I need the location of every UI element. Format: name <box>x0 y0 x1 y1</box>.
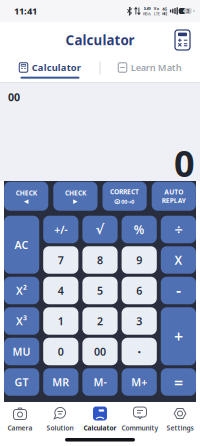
button[interactable]: 2 <box>82 307 118 335</box>
button[interactable]: % <box>122 216 157 243</box>
staticText: Solution <box>46 423 73 432</box>
staticText: X³ <box>16 314 27 328</box>
button[interactable]: 3 <box>122 307 157 335</box>
button[interactable]: √ <box>82 216 118 243</box>
staticText: MR <box>52 375 69 389</box>
button[interactable]: - <box>161 277 196 304</box>
button[interactable]: ÷ <box>161 216 196 243</box>
staticText: Calculator <box>32 61 81 74</box>
staticText: 5 <box>97 283 103 298</box>
button[interactable]: Settings <box>160 406 200 432</box>
staticText: 9 <box>136 253 142 267</box>
button[interactable]: M- <box>82 368 118 396</box>
button[interactable]: Solution <box>40 406 80 432</box>
staticText: 6 <box>136 283 142 298</box>
staticText: M- <box>93 375 106 389</box>
staticText: GT <box>15 375 29 389</box>
button[interactable]: CHECK <box>4 182 48 211</box>
staticText: Camera <box>7 423 32 432</box>
button[interactable]: X² <box>4 277 39 304</box>
staticText: AC <box>15 238 29 252</box>
button[interactable]: MU <box>4 338 39 365</box>
button[interactable]: 0 <box>43 338 78 365</box>
staticText: 0 <box>58 344 64 359</box>
staticText: CHECK <box>65 189 86 197</box>
staticText: REPLAY <box>162 196 186 205</box>
staticText: 4G <box>162 6 167 11</box>
staticText: Settings <box>166 423 193 432</box>
staticText: CHECK <box>16 189 37 197</box>
button[interactable]: AC <box>4 216 39 274</box>
staticText: 2 <box>97 314 103 328</box>
button[interactable]: · <box>122 338 157 365</box>
button[interactable]: X <box>161 246 196 274</box>
staticText: AUTO <box>164 187 183 196</box>
staticText: 00 <box>8 90 20 104</box>
staticText: = <box>174 371 183 393</box>
staticText: MU <box>13 344 31 359</box>
button[interactable]: + <box>161 307 196 365</box>
button[interactable]: Calculator <box>80 406 120 432</box>
staticText: 8 <box>97 253 103 267</box>
button[interactable]: 00 <box>82 338 118 365</box>
staticText: CORRECT <box>110 187 139 196</box>
button[interactable]: 6 <box>122 277 157 304</box>
staticText: Calculator <box>83 423 116 432</box>
staticText: + <box>174 326 183 347</box>
staticText: 00 <box>94 344 106 359</box>
button[interactable]: +/- <box>43 216 78 243</box>
staticText: 4 <box>58 283 64 298</box>
staticText: Vo <box>154 6 160 11</box>
button[interactable]: 1 <box>43 307 78 335</box>
button[interactable]: CORRECT <box>102 182 147 211</box>
staticText: 00→0 <box>121 198 134 205</box>
staticText: X <box>174 252 182 268</box>
button[interactable]: CHECK <box>53 182 97 211</box>
staticText: M+ <box>131 375 147 389</box>
button[interactable]: M+ <box>122 368 157 396</box>
staticText: Calculator <box>65 31 134 49</box>
staticText: 4 <box>183 7 186 15</box>
button[interactable] <box>175 30 200 50</box>
button[interactable]: 9 <box>122 246 157 274</box>
button[interactable]: 5 <box>82 277 118 304</box>
staticText: ÷ <box>174 220 182 239</box>
button[interactable]: 4 <box>43 277 78 304</box>
staticText: 1 <box>58 314 64 328</box>
button[interactable]: AUTO <box>152 182 196 211</box>
button[interactable]: X³ <box>4 307 39 335</box>
staticText: × <box>116 198 119 205</box>
staticText: 11:41 <box>14 5 37 17</box>
button[interactable]: 8 <box>82 246 118 274</box>
button[interactable]: MR <box>43 368 78 396</box>
staticText: Learn Math <box>131 61 182 74</box>
staticText: % <box>134 221 145 237</box>
staticText: X² <box>16 283 27 298</box>
staticText: Community <box>121 423 158 432</box>
staticText: - <box>176 280 181 301</box>
staticText: LTE <box>154 11 160 16</box>
staticText: 3 <box>186 7 189 15</box>
staticText: KB/s <box>143 11 151 16</box>
staticText: 3 <box>136 314 142 328</box>
button[interactable]: Camera <box>0 406 40 432</box>
staticText: √ <box>95 222 104 237</box>
staticText: 0.49 <box>144 6 151 11</box>
button[interactable]: Calculator <box>0 58 100 82</box>
staticText: 7 <box>58 253 64 267</box>
button[interactable]: Learn Math <box>100 58 200 82</box>
staticText: 0 <box>174 139 195 187</box>
button[interactable]: 7 <box>43 246 78 274</box>
staticText: · <box>137 342 141 361</box>
button[interactable]: Community <box>120 406 160 432</box>
staticText: +/- <box>54 222 67 237</box>
button[interactable]: = <box>161 368 196 396</box>
button[interactable]: GT <box>4 368 39 396</box>
